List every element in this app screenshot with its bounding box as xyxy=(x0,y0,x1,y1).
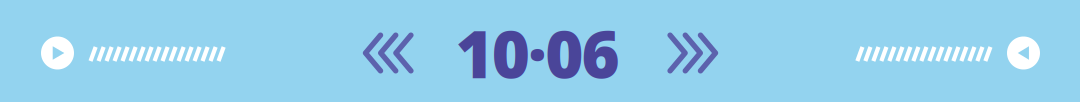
staticText: 10·06 xyxy=(456,10,619,96)
button[interactable]: Rewind xyxy=(363,32,414,73)
button[interactable]: Fast forward xyxy=(667,32,718,73)
button[interactable]: Back xyxy=(1007,36,1040,69)
button[interactable]: Play xyxy=(41,36,74,69)
